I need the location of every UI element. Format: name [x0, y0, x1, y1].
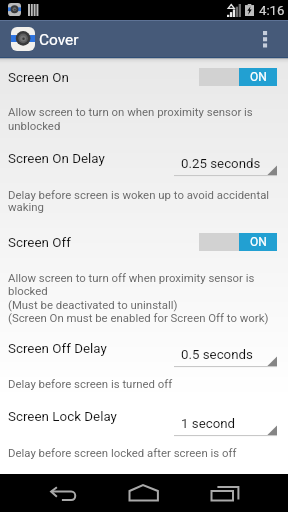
button[interactable]: Screen On toggle: [199, 68, 277, 86]
button[interactable]: Screen Off toggle: [199, 233, 277, 251]
staticText: 1 second: [181, 416, 236, 432]
button[interactable]: Screen Off Delay: [0, 335, 288, 359]
staticText: 0.5 seconds: [181, 347, 253, 363]
button[interactable]: Home: [118, 478, 170, 510]
staticText: ON: [250, 70, 267, 84]
button[interactable]: Screen On Delay: [0, 145, 288, 169]
staticText: Allow screen to turn off when proximity …: [8, 271, 255, 284]
staticText: (Must be deactivated to uninstall): [8, 298, 178, 311]
staticText: Allow screen to turn on when proximity s…: [8, 105, 253, 118]
staticText: waking: [8, 200, 44, 213]
staticText: Screen Off Delay: [8, 341, 107, 357]
staticText: 0.25 seconds: [181, 156, 261, 172]
staticText: blocked: [8, 284, 48, 297]
staticText: Cover: [39, 31, 79, 49]
button[interactable]: Screen Lock Delay: [0, 403, 288, 427]
button[interactable]: Recent apps: [200, 478, 252, 510]
staticText: 4:16: [259, 3, 285, 18]
button[interactable]: Screen On: [0, 64, 288, 88]
button[interactable]: 0.5 seconds: [174, 344, 278, 370]
staticText: Delay before screen is woken up to avoid…: [8, 188, 270, 201]
button[interactable]: 1 second: [174, 413, 278, 439]
staticText: unblocked: [8, 119, 61, 132]
staticText: ON: [250, 235, 267, 249]
staticText: Delay before screen is turned off: [8, 377, 173, 390]
staticText: Delay before screen locked after screen …: [8, 446, 237, 459]
button[interactable]: Screen Off: [0, 229, 288, 253]
button[interactable]: Back: [38, 480, 90, 510]
button[interactable]: More options: [252, 20, 280, 58]
staticText: Screen On Delay: [8, 151, 105, 167]
staticText: Screen On: [8, 70, 69, 86]
staticText: Screen Lock Delay: [8, 409, 117, 425]
staticText: (Screen On must be enabled for Screen Of…: [8, 311, 269, 324]
staticText: Screen Off: [8, 235, 71, 251]
button[interactable]: 0.25 seconds: [174, 153, 278, 179]
